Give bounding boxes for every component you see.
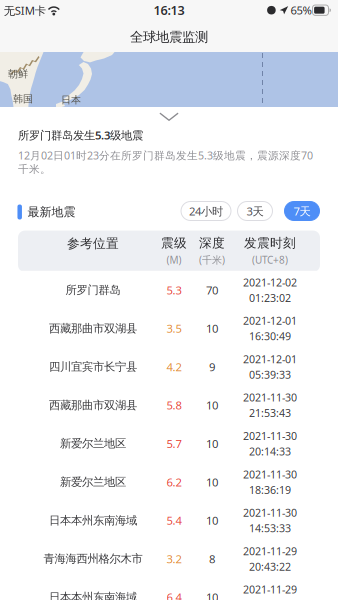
staticText: 5.8: [166, 397, 181, 413]
staticText: 四川宜宾市长宁县: [49, 360, 137, 374]
staticText: 3天: [246, 203, 263, 219]
staticText: 2021-12-01: [243, 352, 297, 366]
button[interactable]: 日本本州东南海域: [18, 501, 320, 540]
staticText: 20:14:33: [249, 444, 291, 459]
staticText: 西藏那曲市双湖县: [49, 398, 137, 412]
staticText: 70: [206, 282, 218, 298]
staticText: 全球地震监测: [130, 29, 208, 45]
staticText: 2021-11-30: [243, 505, 297, 520]
button[interactable]: 西藏那曲市双湖县: [18, 386, 320, 424]
staticText: 10: [206, 321, 218, 336]
staticText: 65%: [290, 2, 311, 18]
staticText: (M): [166, 253, 181, 267]
staticText: 12月02日01时23分在所罗门群岛发生5.3级地震，震源深度70千米。: [18, 148, 313, 176]
staticText: 21:53:43: [249, 406, 291, 420]
staticText: 5.4: [166, 513, 181, 528]
button[interactable]: 3天: [237, 201, 272, 220]
staticText: 青海海西州格尔木市: [43, 552, 142, 566]
staticText: 10: [206, 397, 218, 413]
staticText: 01:23:02: [249, 290, 291, 305]
staticText: 18:36:19: [249, 482, 291, 497]
staticText: 16:30:49: [249, 329, 291, 343]
button[interactable]: 西藏那曲市双湖县: [18, 309, 320, 348]
button[interactable]: 新爱尔兰地区: [18, 463, 320, 501]
staticText: 深度: [199, 235, 225, 251]
staticText: 24小时: [189, 203, 223, 219]
staticText: 所罗门群岛发生5.3级地震: [18, 127, 143, 143]
staticText: 10: [206, 589, 218, 600]
staticText: (UTC+8): [252, 253, 288, 267]
staticText: 14:53:33: [249, 521, 291, 535]
staticText: 最新地震: [28, 204, 76, 219]
button[interactable]: 日本本州东南海域: [18, 578, 320, 600]
staticText: 日本: [61, 94, 81, 106]
staticText: 日本本州东南海域: [49, 590, 137, 600]
staticText: 2021-11-30: [243, 390, 297, 405]
staticText: 16:13: [153, 2, 184, 19]
button[interactable]: 四川宜宾市长宁县: [18, 348, 320, 386]
staticText: 3.2: [166, 551, 181, 566]
staticText: 新爱尔兰地区: [60, 436, 126, 451]
staticText: 4.2: [166, 359, 181, 374]
button[interactable]: 青海海西州格尔木市: [18, 540, 320, 578]
staticText: 20:43:22: [249, 559, 291, 574]
staticText: 2021-11-29: [243, 544, 297, 558]
staticText: 9: [209, 359, 215, 374]
staticText: 10: [206, 513, 218, 528]
staticText: 2021-11-30: [243, 429, 297, 443]
staticText: 7天: [293, 203, 310, 219]
staticText: 朝鲜: [8, 68, 28, 80]
staticText: 10: [206, 474, 218, 490]
button[interactable]: 24小时: [181, 201, 231, 220]
staticText: 5.3: [166, 282, 181, 298]
staticText: 震级: [161, 235, 187, 251]
staticText: 3.5: [166, 321, 181, 336]
staticText: 5.7: [166, 436, 181, 451]
staticText: 西藏那曲市双湖县: [49, 321, 137, 336]
staticText: (千米): [199, 253, 225, 267]
staticText: 2021-12-01: [243, 313, 297, 328]
staticText: 所罗门群岛: [65, 283, 120, 297]
button[interactable]: 所罗门群岛: [18, 271, 320, 309]
staticText: 6.2: [166, 474, 181, 490]
staticText: 发震时刻: [244, 235, 296, 251]
staticText: 10: [206, 436, 218, 451]
button[interactable]: Collapse details: [147, 108, 191, 126]
button[interactable]: 7天: [284, 201, 319, 220]
staticText: 6.4: [166, 589, 181, 600]
staticText: 新爱尔兰地区: [60, 475, 126, 489]
staticText: 8: [209, 551, 215, 566]
staticText: 2021-11-29: [243, 582, 297, 597]
staticText: 2021-12-02: [243, 275, 297, 289]
staticText: 韩国: [13, 93, 33, 105]
staticText: 参考位置: [67, 236, 119, 252]
staticText: 无SIM卡: [4, 3, 46, 18]
staticText: 05:39:33: [249, 367, 291, 382]
staticText: 日本本州东南海域: [49, 513, 137, 528]
staticText: 2021-11-30: [243, 467, 297, 481]
button[interactable]: 全球地震监测: [69, 22, 269, 52]
button[interactable]: 新爱尔兰地区: [18, 424, 320, 463]
